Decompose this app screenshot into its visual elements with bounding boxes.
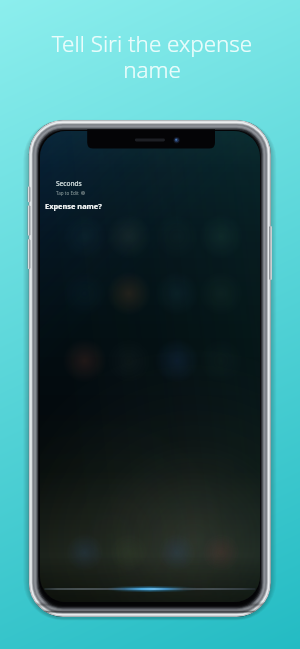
button[interactable]: Seconds (56, 179, 85, 196)
button[interactable]: Expense name? (45, 201, 102, 211)
staticText: Tell Siri the expense name (47, 28, 257, 85)
staticText: Tap to Edit (56, 190, 79, 196)
staticText: Seconds (56, 179, 82, 188)
